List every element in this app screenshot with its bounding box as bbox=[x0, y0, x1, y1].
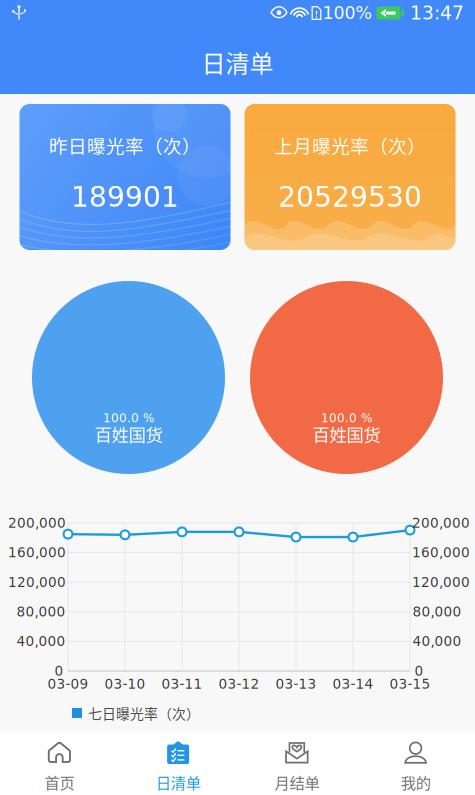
staticText: 03-10 bbox=[104, 676, 145, 692]
staticText: 我的 bbox=[401, 771, 431, 793]
staticText: 百姓国货 bbox=[312, 421, 380, 447]
staticText: 03-14 bbox=[332, 676, 373, 692]
staticText: 200,000 bbox=[412, 515, 470, 531]
staticText: 上月曝光率（次） bbox=[274, 131, 426, 158]
staticText: 0 bbox=[414, 663, 423, 679]
button[interactable]: 上月曝光率（次） bbox=[244, 104, 455, 250]
staticText: 首页 bbox=[44, 771, 74, 793]
staticText: 03-13 bbox=[275, 676, 316, 692]
staticText: 03-12 bbox=[218, 676, 259, 692]
staticText: 03-09 bbox=[47, 676, 88, 692]
staticText: 13:47 bbox=[410, 2, 464, 24]
staticText: 03-15 bbox=[389, 676, 430, 692]
staticText: 160,000 bbox=[412, 545, 470, 560]
staticText: 100.0 % bbox=[321, 411, 372, 425]
staticText: 0 bbox=[54, 663, 63, 679]
staticText: 20529530 bbox=[278, 181, 422, 213]
staticText: 100.0 % bbox=[103, 411, 154, 425]
staticText: 03-11 bbox=[161, 676, 202, 692]
staticText: 百姓国货 bbox=[94, 421, 162, 447]
staticText: 七日曝光率（次） bbox=[88, 703, 200, 723]
staticText: 189901 bbox=[71, 181, 179, 213]
staticText: 40,000 bbox=[412, 633, 461, 649]
button[interactable]: 月结单 bbox=[237, 733, 356, 795]
button[interactable]: 日清单 bbox=[119, 733, 238, 795]
staticText: 日清单 bbox=[156, 771, 201, 793]
staticText: 40,000 bbox=[16, 633, 65, 649]
staticText: 120,000 bbox=[412, 574, 470, 590]
staticText: 月结单 bbox=[274, 771, 319, 793]
button[interactable]: 我的 bbox=[356, 733, 475, 795]
button[interactable]: 昨日曝光率（次） bbox=[19, 104, 230, 250]
staticText: 日清单 bbox=[201, 45, 273, 79]
button[interactable]: 首页 bbox=[0, 733, 119, 795]
staticText: 160,000 bbox=[8, 545, 66, 560]
staticText: 100% bbox=[322, 3, 371, 23]
staticText: 120,000 bbox=[8, 574, 66, 590]
staticText: 80,000 bbox=[412, 604, 461, 620]
staticText: 80,000 bbox=[16, 604, 65, 620]
staticText: 昨日曝光率（次） bbox=[49, 131, 201, 158]
staticText: 200,000 bbox=[8, 515, 66, 531]
